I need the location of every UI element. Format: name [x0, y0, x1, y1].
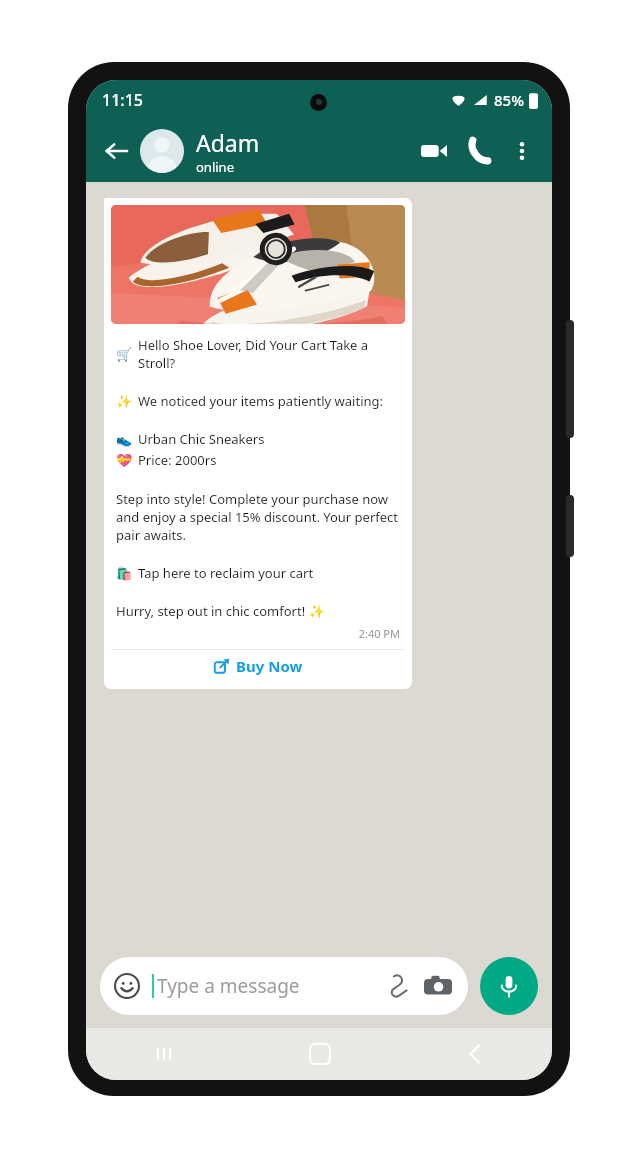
staticText: Hurry, step out in chic comfort! ✨ [116, 602, 325, 620]
staticText: 🛍️ [116, 566, 133, 581]
button[interactable]: Adam [196, 127, 414, 176]
staticText: 11:15 [102, 89, 143, 111]
button[interactable]: More options [504, 133, 540, 169]
staticText: Tap here to reclaim your cart [138, 564, 314, 582]
button[interactable]: Attach [382, 971, 412, 1001]
staticText: 🛒 [116, 347, 133, 362]
staticText: Urban Chic Sneakers [138, 430, 265, 448]
button[interactable]: Profile photo [140, 129, 184, 173]
button[interactable]: 🛒 [104, 198, 412, 689]
button[interactable]: Type a message [100, 957, 468, 1015]
staticText: We noticed your items patiently waiting: [138, 392, 384, 410]
button[interactable]: Back [96, 131, 136, 171]
staticText: Buy Now [236, 656, 303, 676]
staticText: 👟 [116, 432, 133, 447]
button[interactable]: Voice call [460, 131, 500, 171]
button[interactable]: Recents [86, 1028, 242, 1080]
staticText: Adam [196, 127, 260, 158]
staticText: 💝 [116, 453, 133, 468]
staticText: 2:40 PM [116, 626, 400, 641]
button[interactable]: Video call [414, 131, 454, 171]
button[interactable]: Back [397, 1028, 552, 1080]
staticText: Type a message [157, 973, 382, 999]
button[interactable]: Home [242, 1028, 397, 1080]
staticText: online [196, 158, 234, 176]
button[interactable]: Camera [422, 970, 454, 1002]
staticText: Step into style! Complete your purchase … [116, 490, 400, 544]
staticText: 85% [494, 90, 524, 110]
staticText: Hello Shoe Lover, Did Your Cart Take a S… [138, 336, 400, 372]
button[interactable]: Buy Now [111, 650, 405, 682]
staticText: Price: 2000rs [138, 451, 217, 469]
staticText: ✨ [116, 394, 133, 409]
button[interactable]: Voice message [480, 957, 538, 1015]
